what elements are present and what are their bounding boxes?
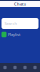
staticText: Playlist bbox=[8, 32, 20, 37]
button[interactable]: Tab bbox=[0, 63, 10, 72]
button[interactable]: Tab bbox=[30, 63, 40, 72]
button[interactable]: Tab bbox=[20, 63, 30, 72]
button[interactable]: Playlist bbox=[0, 31, 40, 38]
staticText: Chats bbox=[14, 1, 26, 7]
button[interactable]: Tab bbox=[10, 63, 20, 72]
staticText: Search bbox=[4, 21, 16, 26]
